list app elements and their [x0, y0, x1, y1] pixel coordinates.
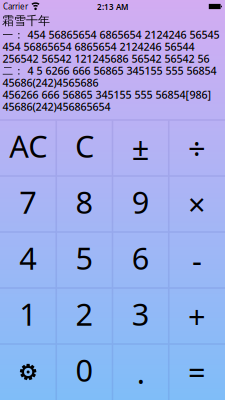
staticText: 5: [75, 237, 93, 278]
staticText: 一： 454 56865654 6865654 2124246 56545: [2, 27, 219, 42]
staticText: -: [192, 240, 202, 280]
staticText: ±: [132, 128, 150, 168]
button[interactable]: 1: [0, 288, 56, 344]
staticText: 256542 56542 121245686 56542 56542 56: [2, 51, 209, 66]
button[interactable]: +: [169, 288, 225, 344]
staticText: .: [137, 352, 145, 392]
staticText: 2: [75, 293, 93, 334]
staticText: 1: [19, 293, 37, 334]
staticText: 8: [75, 181, 93, 222]
button[interactable]: ±: [112, 120, 169, 176]
staticText: 霜雪千年: [2, 13, 50, 28]
staticText: ÷: [188, 128, 206, 168]
staticText: 2:13 AM: [97, 2, 128, 12]
staticText: =: [188, 352, 206, 392]
button[interactable]: 4: [0, 232, 56, 288]
staticText: Carrier: [3, 1, 28, 12]
staticText: 9: [132, 181, 150, 222]
button[interactable]: 0: [56, 344, 112, 400]
staticText: 6: [132, 237, 150, 278]
button[interactable]: 5: [56, 232, 112, 288]
staticText: 二： 4 5 6266 666 56865 345155 555 56854: [2, 63, 216, 78]
button[interactable]: 8: [56, 176, 112, 232]
button[interactable]: =: [169, 344, 225, 400]
button[interactable]: ×: [169, 176, 225, 232]
staticText: 3: [132, 293, 150, 334]
staticText: 45686(242)4565686: [2, 75, 98, 90]
staticText: 456266 666 56865 345155 555 56854[986]: [2, 87, 211, 102]
button[interactable]: -: [169, 232, 225, 288]
button[interactable]: 3: [112, 288, 169, 344]
button[interactable]: 7: [0, 176, 56, 232]
button[interactable]: .: [112, 344, 169, 400]
staticText: 0: [75, 349, 93, 390]
button[interactable]: 6: [112, 232, 169, 288]
staticText: +: [188, 296, 206, 336]
staticText: 4: [19, 237, 37, 278]
staticText: 454 56865654 6865654 2124246 56544: [2, 39, 194, 54]
staticText: 7: [19, 181, 37, 222]
staticText: C: [75, 125, 94, 166]
button[interactable]: Settings: [0, 344, 56, 400]
button[interactable]: ÷: [169, 120, 225, 176]
button[interactable]: 9: [112, 176, 169, 232]
button[interactable]: AC: [0, 120, 56, 176]
staticText: 45686(242)456865654: [2, 99, 110, 114]
staticText: ×: [188, 184, 206, 224]
button[interactable]: 2: [56, 288, 112, 344]
staticText: AC: [9, 125, 47, 166]
button[interactable]: C: [56, 120, 112, 176]
